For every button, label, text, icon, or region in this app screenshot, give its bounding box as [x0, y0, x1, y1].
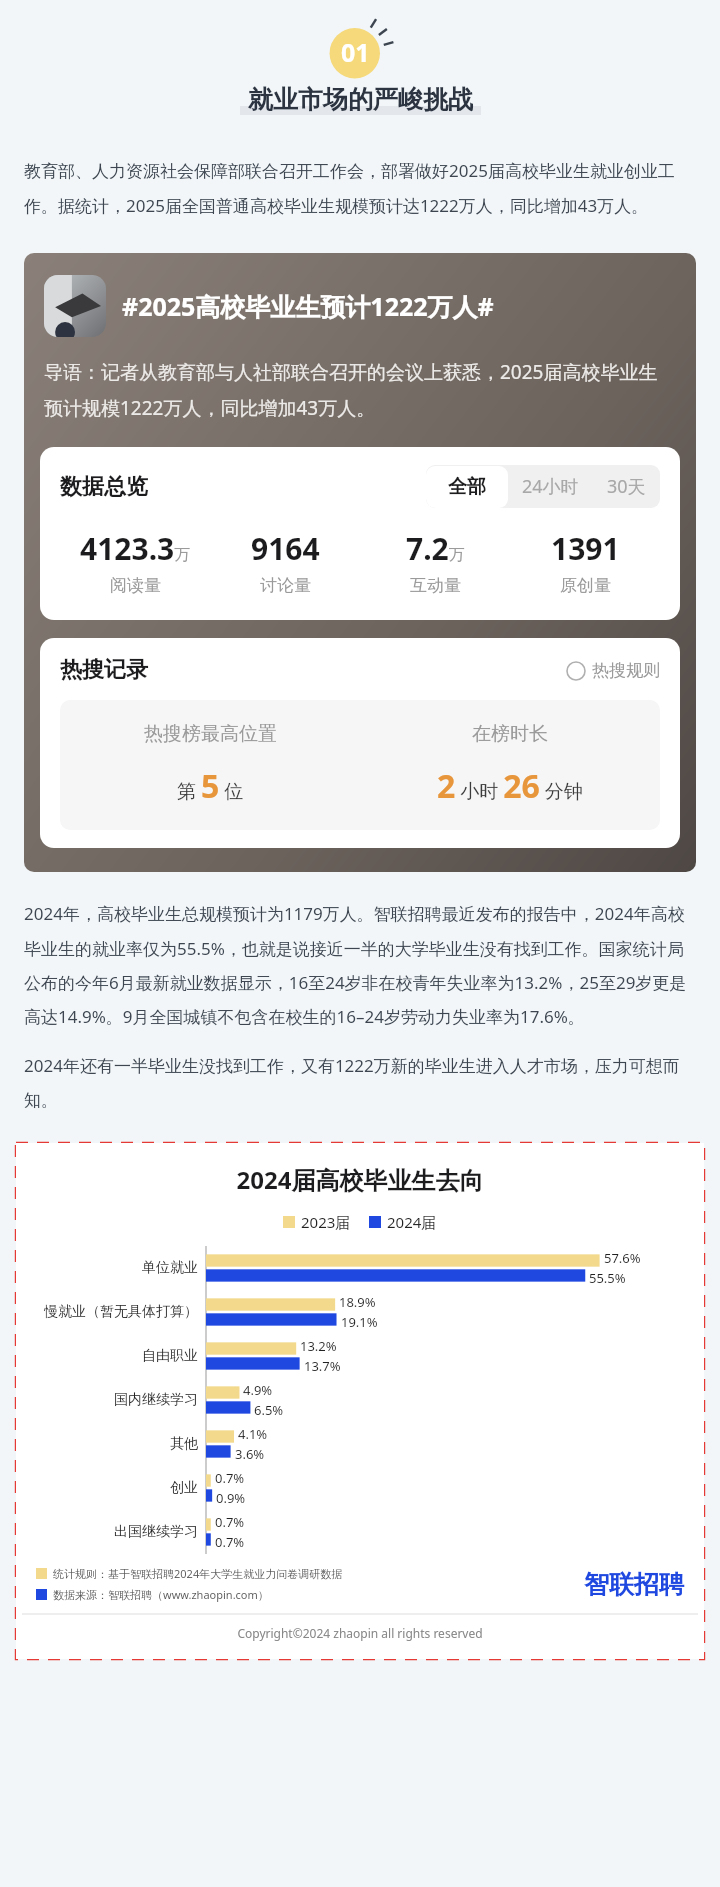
staticText: 第 5 位 [177, 764, 244, 808]
staticText: 创业 [170, 1479, 198, 1497]
staticText: 0.7% [215, 1513, 245, 1531]
staticText: 出国继续学习 [114, 1523, 198, 1541]
staticText: 原创量 [560, 575, 611, 596]
staticText: 2024届高校毕业生去向 [22, 1163, 698, 1196]
button[interactable]: 24小时 [508, 465, 593, 508]
staticText: 互动量 [410, 575, 461, 596]
staticText: 24小时 [522, 474, 579, 499]
staticText: 13.2% [300, 1337, 337, 1355]
staticText: 7.2万 [406, 528, 465, 569]
staticText: 智联招聘 [584, 1569, 684, 1600]
staticText: 0.9% [216, 1489, 246, 1507]
staticText: 9164 [251, 528, 320, 569]
staticText: 统计规则：基于智联招聘2024年大学生就业力问卷调研数据 [53, 1566, 343, 1581]
staticText: 国内继续学习 [114, 1391, 198, 1409]
staticText: 就业市场的严峻挑战 [248, 84, 473, 115]
staticText: 其他 [170, 1435, 198, 1453]
staticText: 数据总览 [60, 473, 148, 501]
staticText: 阅读量 [110, 575, 161, 596]
staticText: 2023届 [301, 1212, 351, 1232]
staticText: 热搜记录 [60, 656, 148, 684]
staticText: 数据来源：智联招聘（www.zhaopin.com） [53, 1587, 269, 1602]
staticText: 3.6% [235, 1445, 265, 1463]
staticText: 4.9% [243, 1381, 273, 1399]
staticText: 0.7% [215, 1469, 245, 1487]
staticText: 4.1% [238, 1425, 268, 1443]
staticText: 55.5% [589, 1269, 626, 1287]
staticText: 自由职业 [142, 1347, 198, 1365]
staticText: 导语：记者从教育部与人社部联合召开的会议上获悉，2025届高校毕业生预计规模12… [44, 359, 676, 421]
staticText: 1391 [551, 528, 620, 569]
button[interactable]: 热搜规则 [566, 660, 660, 681]
staticText: 13.7% [304, 1357, 341, 1375]
staticText: 热搜榜最高位置 [144, 722, 277, 746]
button[interactable]: #2025高校毕业生预计1222万人# [24, 253, 696, 872]
staticText: 0.7% [215, 1533, 245, 1551]
staticText: 2024届 [387, 1212, 437, 1232]
staticText: Copyright©2024 zhaopin all rights reserv… [22, 1625, 698, 1641]
staticText: 讨论量 [260, 575, 311, 596]
staticText: 单位就业 [142, 1259, 198, 1277]
staticText: 57.6% [604, 1249, 641, 1267]
staticText: 6.5% [254, 1401, 284, 1419]
staticText: 18.9% [339, 1293, 376, 1311]
button[interactable]: 30天 [593, 465, 660, 508]
staticText: 热搜规则 [592, 660, 660, 681]
staticText: 4123.3万 [80, 528, 191, 569]
staticText: 全部 [448, 475, 486, 499]
staticText: 在榜时长 [472, 722, 548, 746]
staticText: 2024年，高校毕业生总规模预计为1179万人。智联招聘最近发布的报告中，202… [24, 902, 696, 1028]
staticText: 01 [341, 35, 370, 69]
staticText: 30天 [607, 474, 646, 499]
staticText: 教育部、人力资源社会保障部联合召开工作会，部署做好2025届高校毕业生就业创业工… [24, 159, 696, 217]
staticText: 2 小时 26 分钟 [437, 764, 583, 808]
staticText: 慢就业（暂无具体打算） [44, 1303, 198, 1321]
staticText: 2024年还有一半毕业生没找到工作，又有1222万新的毕业生进入人才市场，压力可… [24, 1054, 696, 1111]
button[interactable]: 全部 [426, 466, 508, 508]
staticText: #2025高校毕业生预计1222万人# [122, 289, 494, 323]
staticText: 19.1% [341, 1313, 378, 1331]
